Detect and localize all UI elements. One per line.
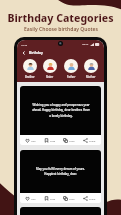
button[interactable]: Brother bbox=[23, 59, 37, 79]
button[interactable]: Back bbox=[20, 49, 28, 57]
staticText: Brother bbox=[25, 75, 35, 79]
staticText: Wishing you a happy and prosperous year … bbox=[32, 103, 90, 118]
staticText: 10:18 bbox=[21, 43, 28, 46]
staticText: Birthday Categories bbox=[7, 11, 114, 25]
staticText: Copy bbox=[69, 139, 75, 142]
staticText: May you fulfil every dream of yours. Hap… bbox=[36, 167, 85, 176]
button[interactable]: Copy bbox=[62, 138, 76, 143]
button[interactable]: Father bbox=[64, 59, 78, 79]
button[interactable]: Sister bbox=[43, 59, 57, 79]
staticText: Easily Choose birthday Quotes bbox=[24, 26, 98, 33]
staticText: Mother bbox=[86, 75, 96, 79]
staticText: Like bbox=[31, 197, 36, 200]
button[interactable]: Copy bbox=[62, 196, 76, 201]
staticText: Copy bbox=[69, 197, 75, 200]
button[interactable]: Mother bbox=[84, 59, 98, 79]
button[interactable]: Like bbox=[24, 196, 37, 201]
button[interactable]: Like bbox=[24, 138, 37, 143]
staticText: Save bbox=[50, 139, 56, 142]
staticText: Share bbox=[89, 197, 96, 200]
button[interactable]: Share bbox=[82, 138, 97, 143]
staticText: Sister bbox=[46, 75, 54, 79]
staticText: VoLTE bbox=[82, 43, 89, 46]
button[interactable]: Share bbox=[82, 196, 97, 201]
staticText: Save bbox=[50, 197, 56, 200]
staticText: Like bbox=[31, 139, 36, 142]
button[interactable]: Save bbox=[43, 196, 57, 201]
staticText: Share bbox=[89, 139, 96, 142]
staticText: Birthday bbox=[29, 51, 43, 55]
staticText: Father bbox=[67, 75, 76, 79]
button[interactable]: Save bbox=[43, 138, 57, 143]
